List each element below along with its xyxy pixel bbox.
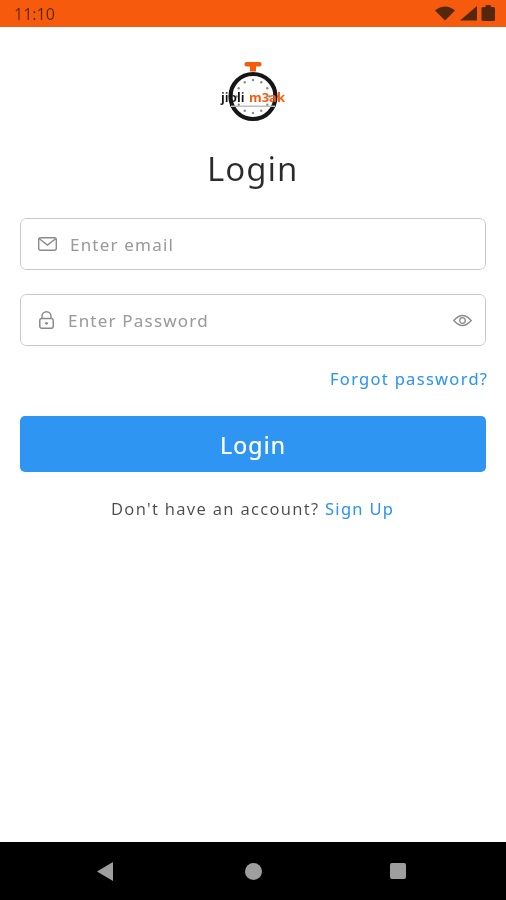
staticText: Enter email <box>70 233 175 256</box>
staticText: 11:10 <box>14 3 55 25</box>
button[interactable] <box>374 847 422 895</box>
staticText: Don't have an account? <box>111 497 325 519</box>
staticText: Login <box>220 429 287 460</box>
button[interactable]: Enter email <box>20 218 486 270</box>
button[interactable] <box>229 847 277 895</box>
staticText: Enter Password <box>68 309 209 332</box>
button[interactable]: Enter Password <box>20 294 486 346</box>
button[interactable]: Login <box>20 416 486 472</box>
staticText: m3ak <box>249 88 285 106</box>
staticText: Login <box>207 146 299 191</box>
staticText: Sign Up <box>325 497 395 519</box>
button[interactable]: Don't have an account? <box>111 497 395 519</box>
button[interactable] <box>81 847 129 895</box>
staticText: jibli <box>221 88 249 106</box>
button[interactable]: Forgot password? <box>330 367 489 389</box>
